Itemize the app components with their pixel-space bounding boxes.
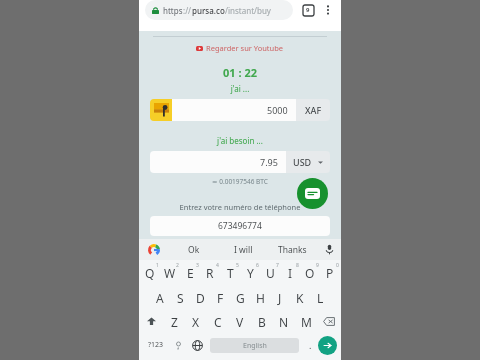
- staticText: 0: [336, 262, 339, 269]
- staticText: G: [236, 290, 245, 306]
- staticText: C: [214, 314, 222, 330]
- button[interactable]: Y: [240, 260, 260, 285]
- staticText: Ok: [188, 244, 200, 256]
- staticText: 9: [316, 262, 319, 269]
- staticText: P: [326, 265, 334, 281]
- staticText: D: [196, 290, 205, 306]
- staticText: Q: [145, 265, 155, 281]
- button[interactable]: Comma and settings: [169, 333, 187, 357]
- button[interactable]: N: [273, 310, 295, 333]
- staticText: K: [296, 290, 304, 306]
- button[interactable]: W: [160, 260, 180, 285]
- button[interactable]: Backspace: [317, 310, 341, 333]
- staticText: /instant/buy: [225, 5, 271, 16]
- staticText: j'ai besoin ...: [139, 135, 341, 146]
- staticText: 7: [276, 262, 279, 269]
- staticText: USD: [293, 156, 312, 168]
- staticText: 2: [176, 262, 179, 269]
- button[interactable]: 7.95: [150, 151, 286, 173]
- staticText: .: [309, 339, 312, 351]
- staticText: X: [192, 314, 200, 330]
- staticText: 8: [296, 262, 299, 269]
- button[interactable]: English: [210, 338, 299, 353]
- staticText: A: [156, 290, 164, 306]
- staticText: 01 : 22: [139, 65, 341, 80]
- staticText: I: [288, 265, 293, 281]
- staticText: T: [227, 265, 234, 281]
- staticText: H: [256, 290, 265, 306]
- button[interactable]: Tabs: [299, 1, 317, 19]
- staticText: 6: [256, 262, 259, 269]
- staticText: Y: [247, 265, 254, 281]
- staticText: M: [301, 314, 312, 330]
- staticText: 673496774: [218, 220, 262, 232]
- staticText: F: [217, 290, 224, 306]
- staticText: O: [305, 265, 315, 281]
- button[interactable]: U: [260, 260, 280, 285]
- button[interactable]: Voice input: [317, 239, 341, 260]
- button[interactable]: J: [270, 285, 290, 310]
- button[interactable]: .: [302, 333, 318, 357]
- button[interactable]: O: [300, 260, 320, 285]
- button[interactable]: Select country: [150, 99, 172, 121]
- staticText: I will: [234, 244, 253, 256]
- button[interactable]: E: [180, 260, 200, 285]
- button[interactable]: Q: [140, 260, 160, 285]
- button[interactable]: B: [251, 310, 273, 333]
- button[interactable]: L: [310, 285, 330, 310]
- button[interactable]: I: [280, 260, 300, 285]
- button[interactable]: Google search: [139, 239, 169, 260]
- button[interactable]: F: [210, 285, 230, 310]
- button[interactable]: I will: [219, 239, 268, 260]
- staticText: ?123: [148, 340, 164, 350]
- button[interactable]: D: [190, 285, 210, 310]
- button[interactable]: G: [230, 285, 250, 310]
- staticText: B: [258, 314, 266, 330]
- button[interactable]: 5000: [172, 99, 296, 121]
- staticText: R: [206, 265, 214, 281]
- button[interactable]: Send: [318, 336, 337, 355]
- button[interactable]: USD: [286, 151, 330, 173]
- button[interactable]: ?123: [143, 333, 169, 357]
- staticText: 9: [306, 6, 310, 14]
- button[interactable]: M: [295, 310, 317, 333]
- button[interactable]: https: [145, 0, 293, 20]
- button[interactable]: R: [200, 260, 220, 285]
- staticText: Z: [171, 314, 178, 330]
- button[interactable]: Shift: [139, 310, 163, 333]
- staticText: E: [187, 265, 194, 281]
- button[interactable]: Change language: [187, 333, 207, 357]
- staticText: 5000: [267, 104, 288, 116]
- staticText: U: [266, 265, 275, 281]
- staticText: XAF: [305, 104, 322, 116]
- button[interactable]: A: [150, 285, 170, 310]
- button[interactable]: XAF: [296, 99, 330, 121]
- button[interactable]: Z: [163, 310, 185, 333]
- staticText: S: [177, 290, 184, 306]
- button[interactable]: C: [207, 310, 229, 333]
- button[interactable]: P: [320, 260, 340, 285]
- staticText: https: [163, 5, 183, 16]
- staticText: ≈ 0.00197546 BTC: [139, 177, 341, 186]
- button[interactable]: Ok: [169, 239, 219, 260]
- button[interactable]: X: [185, 310, 207, 333]
- staticText: Thanks: [278, 244, 307, 256]
- button[interactable]: 673496774: [150, 216, 330, 236]
- staticText: 1: [156, 262, 159, 269]
- button[interactable]: K: [290, 285, 310, 310]
- staticText: 7.95: [260, 156, 278, 168]
- staticText: J: [278, 290, 282, 306]
- button[interactable]: Regarder sur Youtube: [139, 43, 341, 53]
- staticText: V: [236, 314, 244, 330]
- button[interactable]: H: [250, 285, 270, 310]
- button[interactable]: T: [220, 260, 240, 285]
- button[interactable]: S: [170, 285, 190, 310]
- button[interactable]: Thanks: [268, 239, 317, 260]
- button[interactable]: V: [229, 310, 251, 333]
- staticText: Regarder sur Youtube: [206, 43, 284, 53]
- staticText: 3: [196, 262, 199, 269]
- staticText: W: [164, 265, 176, 281]
- staticText: English: [243, 341, 267, 351]
- button[interactable]: More options: [319, 1, 337, 19]
- button[interactable]: Chat: [297, 178, 328, 209]
